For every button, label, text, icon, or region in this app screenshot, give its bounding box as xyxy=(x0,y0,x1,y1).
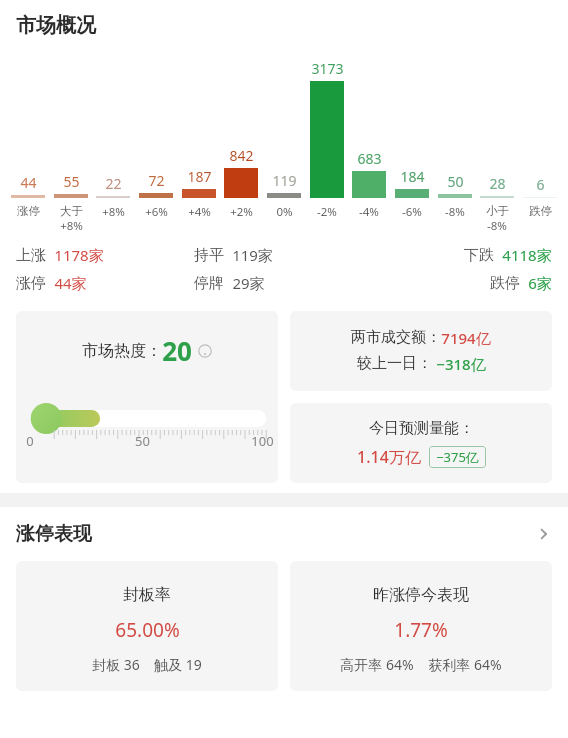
button[interactable]: 今日预测量能： xyxy=(290,403,552,483)
staticText: 184 xyxy=(400,167,425,186)
button[interactable]: 市场热度： xyxy=(16,311,278,483)
staticText: 触及 19 xyxy=(154,655,202,674)
staticText: +4% xyxy=(188,204,211,220)
staticText: 50 xyxy=(135,432,150,450)
staticText: 28 xyxy=(489,174,506,193)
staticText: 187 xyxy=(187,167,212,186)
staticText: 小于 xyxy=(486,204,509,218)
staticText: 1.14万亿 xyxy=(357,446,421,468)
staticText: 20 xyxy=(162,333,192,368)
staticText: 涨停 xyxy=(17,204,40,218)
staticText: 6 xyxy=(536,175,545,194)
staticText: 119 xyxy=(272,171,297,190)
staticText: -4% xyxy=(359,204,379,220)
staticText: 跌停 xyxy=(529,204,552,218)
staticText: 0 xyxy=(26,432,34,450)
staticText: 119家 xyxy=(232,245,273,265)
staticText: 683 xyxy=(357,149,382,168)
staticText: 44 xyxy=(20,173,37,192)
staticText: 0% xyxy=(276,204,293,220)
staticText: 29家 xyxy=(232,273,265,293)
staticText: 1.77% xyxy=(394,617,448,643)
staticText: 两市成交额： xyxy=(351,328,441,347)
staticText: -8% xyxy=(445,204,465,220)
staticText: 封板 36 xyxy=(92,655,140,674)
staticText: 7194亿 xyxy=(441,328,491,348)
other: Help xyxy=(198,344,212,358)
staticText: 72 xyxy=(148,171,165,190)
staticText: 涨停 xyxy=(16,274,46,293)
staticText: 昨涨停今表现 xyxy=(373,585,469,605)
staticText: -2% xyxy=(317,204,337,220)
other: More xyxy=(536,526,552,542)
button[interactable]: 昨涨停今表现 xyxy=(290,561,552,691)
staticText: 大于 xyxy=(60,204,83,218)
staticText: 持平 xyxy=(194,246,224,265)
staticText: 1178家 xyxy=(54,245,104,265)
staticText: 100 xyxy=(251,432,274,450)
staticText: 6家 xyxy=(528,273,552,293)
staticText: 上涨 xyxy=(16,246,46,265)
staticText: 50 xyxy=(447,172,464,191)
staticText: 44家 xyxy=(54,273,87,293)
staticText: 较上一日： xyxy=(357,354,432,373)
staticText: 市场热度： xyxy=(82,341,162,361)
staticText: -8% xyxy=(487,218,507,234)
staticText: +2% xyxy=(230,204,253,220)
button[interactable]: 涨停表现 xyxy=(0,507,568,561)
button[interactable]: 两市成交额： xyxy=(290,311,552,391)
staticText: 跌停 xyxy=(490,274,520,293)
staticText: 停牌 xyxy=(194,274,224,293)
staticText: 高开率 64% xyxy=(340,655,414,674)
staticText: +8% xyxy=(102,204,125,220)
staticText: 65.00% xyxy=(115,617,180,643)
staticText: -6% xyxy=(402,204,422,220)
staticText: 涨停表现 xyxy=(16,522,92,546)
staticText: +6% xyxy=(145,204,168,220)
button[interactable]: 封板率 xyxy=(16,561,278,691)
staticText: −375亿 xyxy=(436,448,479,466)
staticText: 获利率 64% xyxy=(428,655,502,674)
staticText: 4118家 xyxy=(502,245,552,265)
staticText: 下跌 xyxy=(464,246,494,265)
staticText: 55 xyxy=(63,172,80,191)
staticText: 今日预测量能： xyxy=(369,419,474,438)
staticText: 842 xyxy=(229,146,254,165)
staticText: −318亿 xyxy=(432,354,486,374)
staticText: +8% xyxy=(60,218,83,234)
staticText: 3173 xyxy=(311,59,344,78)
staticText: 市场概况 xyxy=(16,13,96,38)
button[interactable]: 市场概况 xyxy=(0,0,568,50)
staticText: 封板率 xyxy=(123,585,171,605)
staticText: 22 xyxy=(105,174,122,193)
